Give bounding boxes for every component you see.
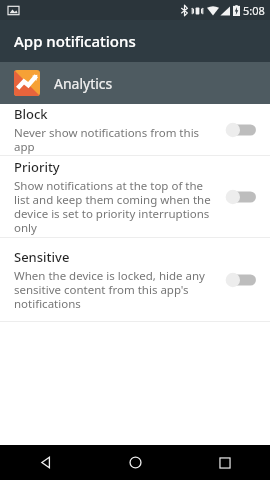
button[interactable]: Analytics	[0, 62, 270, 104]
button[interactable]: Toggle	[224, 185, 258, 209]
button[interactable]: Home	[90, 445, 180, 480]
staticText: Never show notifications from this app	[14, 125, 216, 154]
staticText: 5:08	[243, 3, 265, 18]
staticText: Sensitive	[14, 248, 70, 266]
button[interactable]: Back	[0, 445, 90, 480]
staticText: App notifications	[14, 31, 136, 51]
staticText: Block	[14, 105, 48, 123]
button[interactable]: Priority	[0, 156, 270, 237]
button[interactable]: Toggle	[224, 268, 258, 292]
button[interactable]: Recent apps	[180, 445, 270, 480]
staticText: Show notifications at the top of the lis…	[14, 178, 216, 235]
button[interactable]: Block	[0, 104, 270, 155]
staticText: When the device is locked, hide any sens…	[14, 268, 216, 311]
staticText: Priority	[14, 158, 60, 176]
button[interactable]: Sensitive	[0, 238, 270, 321]
button[interactable]: Toggle	[224, 118, 258, 142]
staticText: Analytics	[54, 74, 113, 93]
